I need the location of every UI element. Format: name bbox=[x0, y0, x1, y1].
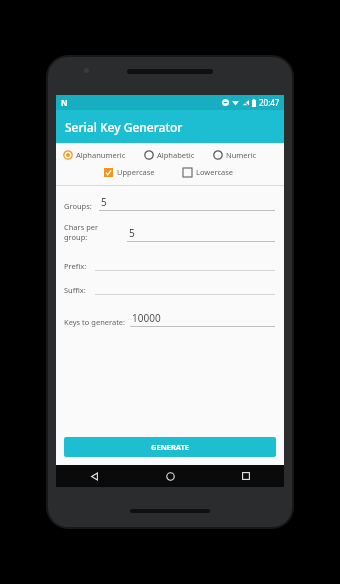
staticText: Chars per group: bbox=[64, 222, 123, 242]
button[interactable]: GENERATE bbox=[64, 437, 276, 457]
staticText: 20:47 bbox=[259, 97, 280, 108]
button[interactable]: Chars per group: bbox=[64, 222, 275, 242]
button[interactable]: Keys to generate: bbox=[64, 311, 275, 327]
button[interactable]: Home bbox=[132, 465, 208, 487]
button[interactable]: Alphanumeric bbox=[63, 150, 144, 160]
staticText: 10000 bbox=[132, 311, 161, 325]
staticText: Prefix: bbox=[64, 261, 87, 271]
staticText: Keys to generate: bbox=[64, 317, 126, 327]
staticText: Alphanumeric bbox=[76, 150, 126, 160]
staticText: 5 bbox=[129, 226, 135, 240]
button[interactable]: Suffix: bbox=[64, 282, 275, 295]
staticText: Alphabetic bbox=[157, 150, 195, 160]
staticText: GENERATE bbox=[151, 442, 190, 452]
staticText: Lowercase bbox=[196, 167, 234, 177]
button[interactable]: Back bbox=[56, 465, 132, 487]
button[interactable]: Uppercase bbox=[104, 167, 183, 177]
staticText: Uppercase bbox=[117, 167, 155, 177]
button[interactable]: Lowercase bbox=[183, 167, 262, 177]
button[interactable]: Numeric bbox=[213, 150, 277, 160]
staticText: Groups: bbox=[64, 201, 92, 211]
button[interactable]: Groups: bbox=[64, 195, 275, 211]
button[interactable]: Alphabetic bbox=[144, 150, 213, 160]
button[interactable]: Prefix: bbox=[64, 258, 275, 271]
staticText: Suffix: bbox=[64, 285, 86, 295]
staticText: 5 bbox=[101, 195, 107, 209]
staticText: N bbox=[61, 97, 68, 108]
staticText: Serial Key Generator bbox=[65, 119, 183, 135]
staticText: Numeric bbox=[226, 150, 257, 160]
button[interactable]: Recent apps bbox=[208, 465, 284, 487]
